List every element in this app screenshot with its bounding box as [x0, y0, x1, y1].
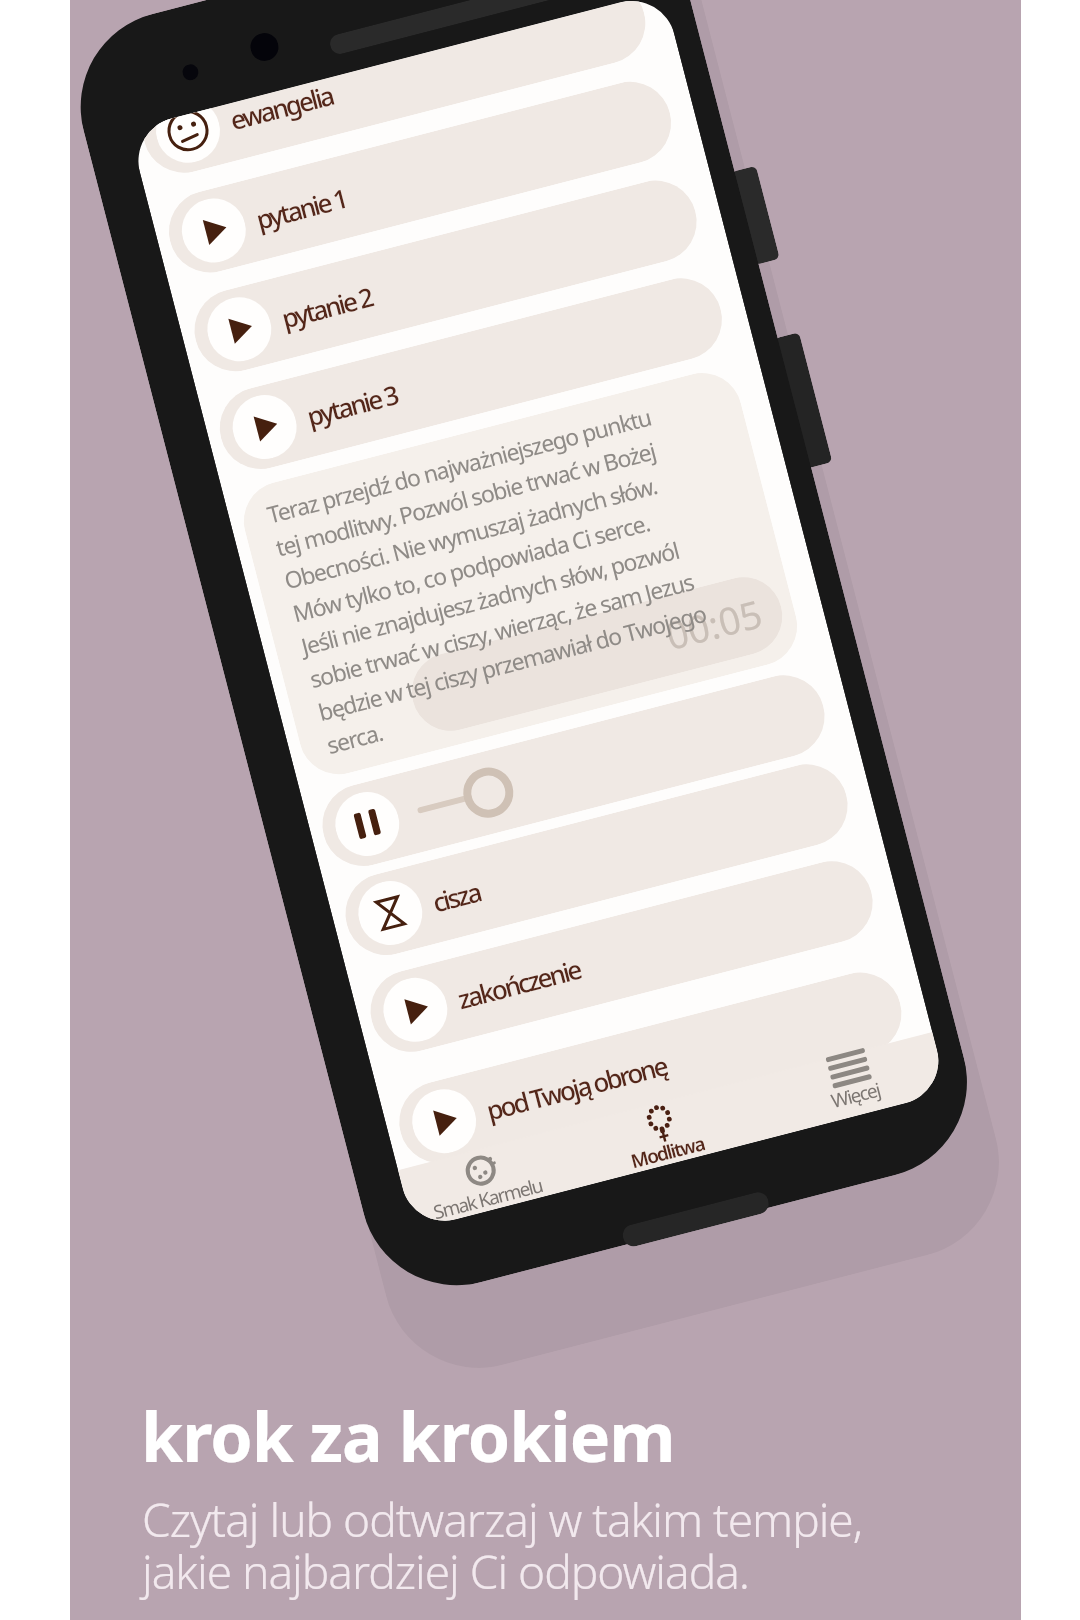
staticText: cisza [429, 873, 484, 919]
button[interactable]: pytanie 3 [211, 269, 731, 478]
button[interactable]: Smak Karmelu [408, 1133, 559, 1228]
staticText: 00:05 [660, 586, 768, 661]
staticText: pytanie 2 [278, 279, 375, 336]
staticText: Smak Karmelu [430, 1172, 545, 1224]
staticText: Modlitwa [628, 1130, 707, 1173]
staticText: pytanie 1 [252, 180, 350, 237]
button[interactable]: cisza [336, 755, 857, 964]
staticText: pod Twoją obronę [482, 1047, 670, 1128]
button[interactable]: ewangelia [140, 0, 654, 182]
staticText: ewangelia [227, 78, 337, 137]
button[interactable]: Modlitwa [587, 1086, 738, 1181]
button[interactable]: zakończenie [361, 852, 882, 1061]
button[interactable]: pytanie 1 [160, 73, 680, 281]
button[interactable]: pod Twoją obronę [390, 964, 910, 1172]
button[interactable] [313, 666, 834, 875]
staticText: pytanie 3 [303, 376, 401, 433]
staticText: Więcej [828, 1076, 883, 1113]
button[interactable]: Więcej [775, 1029, 927, 1124]
staticText: Teraz przejdź do najważniejszego punktu … [264, 400, 717, 760]
button[interactable]: pytanie 2 [185, 172, 706, 380]
staticText: krok za krokiem [141, 1389, 675, 1482]
staticText: Czytaj lub odtwarzaj w takim tempie, jak… [142, 1488, 863, 1602]
staticText: zakończenie [454, 951, 583, 1016]
